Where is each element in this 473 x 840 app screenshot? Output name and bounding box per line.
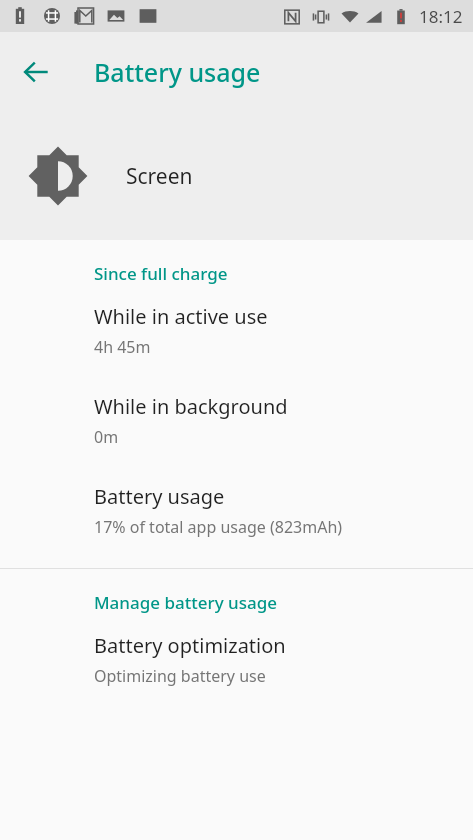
staticText: Battery optimization [94, 632, 286, 659]
staticText: While in active use [94, 303, 268, 330]
staticText: Manage battery usage [94, 591, 449, 614]
staticText: Optimizing battery use [94, 665, 266, 687]
staticText: 17% of total app usage (823mAh) [94, 516, 343, 538]
staticText: Screen [126, 162, 193, 191]
staticText: Battery usage [94, 483, 225, 510]
button[interactable]: Battery optimization [0, 632, 473, 687]
staticText: 4h 45m [94, 336, 151, 358]
staticText: Since full charge [94, 262, 449, 285]
button[interactable]: Back [12, 48, 60, 96]
staticText: Battery usage [94, 55, 261, 89]
staticText: 0m [94, 426, 119, 448]
staticText: While in background [94, 393, 288, 420]
staticText: 18:12 [419, 5, 463, 28]
